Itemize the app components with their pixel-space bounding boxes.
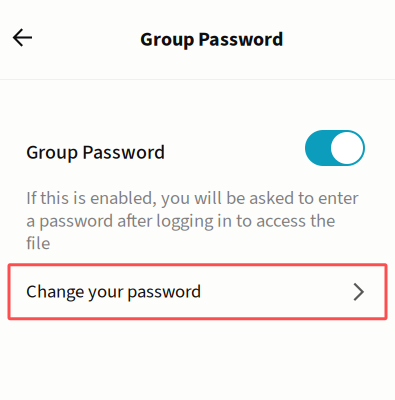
button[interactable]: Back: [0, 15, 45, 63]
staticText: If this is enabled, you will be asked to…: [26, 185, 358, 257]
button[interactable]: Group Password: [305, 130, 365, 166]
button[interactable]: Change your password: [9, 265, 386, 319]
staticText: Group Password: [26, 138, 165, 167]
staticText: Group Password: [140, 25, 283, 54]
staticText: Change your password: [26, 278, 201, 305]
